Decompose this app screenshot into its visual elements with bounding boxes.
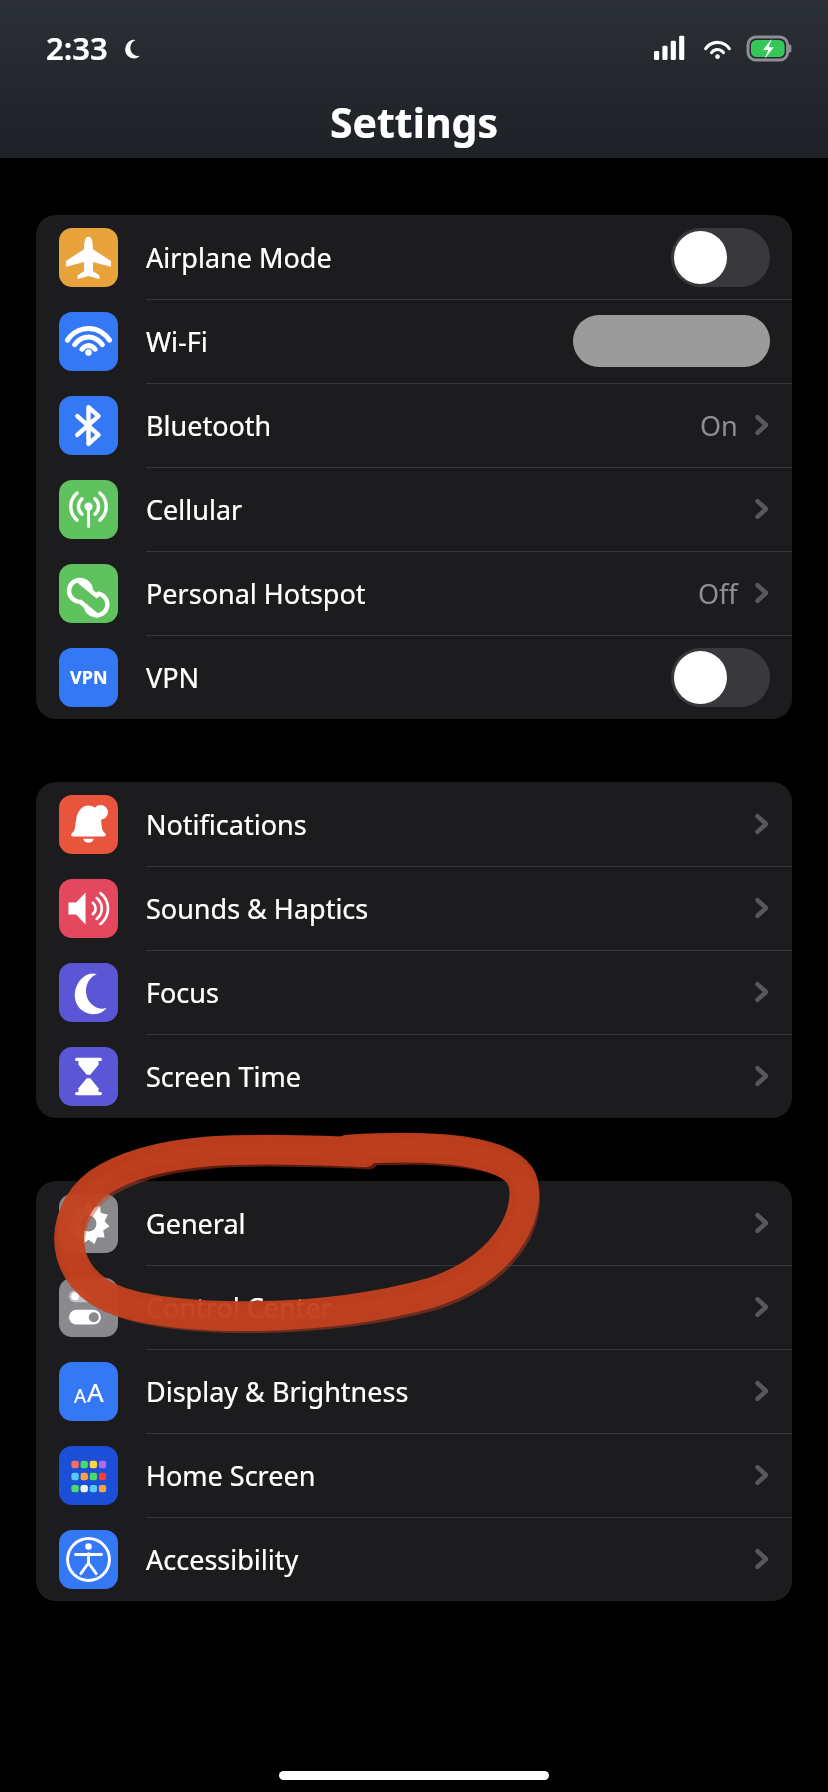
staticText: VPN bbox=[70, 665, 108, 690]
staticText: Bluetooth bbox=[146, 407, 272, 444]
button[interactable]: Focus bbox=[36, 950, 792, 1034]
staticText: Accessibility bbox=[146, 1541, 299, 1578]
staticText: A bbox=[87, 1374, 104, 1409]
button[interactable]: Airplane Mode toggle bbox=[671, 228, 770, 287]
staticText: Screen Time bbox=[146, 1058, 302, 1095]
button[interactable]: Screen Time bbox=[36, 1034, 792, 1118]
staticText: Control Center bbox=[146, 1289, 332, 1326]
staticText: Off bbox=[698, 575, 738, 612]
staticText: Notifications bbox=[146, 806, 307, 843]
staticText: 2:33 bbox=[46, 27, 108, 69]
staticText: On bbox=[700, 407, 738, 444]
button[interactable]: Notifications bbox=[36, 782, 792, 866]
button[interactable]: Personal Hotspot bbox=[36, 551, 792, 635]
button[interactable]: VPN toggle bbox=[671, 648, 770, 707]
button[interactable]: Accessibility bbox=[36, 1517, 792, 1601]
button[interactable]: Wi-Fi bbox=[36, 299, 792, 383]
staticText: Cellular bbox=[146, 491, 243, 528]
button[interactable]: Home Screen bbox=[36, 1433, 792, 1517]
button[interactable]: Cellular bbox=[36, 467, 792, 551]
staticText: Personal Hotspot bbox=[146, 575, 366, 612]
staticText: VPN bbox=[146, 659, 200, 696]
button[interactable]: VPN bbox=[36, 635, 792, 719]
staticText: Airplane Mode bbox=[146, 239, 332, 276]
staticText: Home Screen bbox=[146, 1457, 316, 1494]
button[interactable]: A bbox=[36, 1349, 792, 1433]
staticText: General bbox=[146, 1205, 246, 1242]
staticText: Focus bbox=[146, 974, 219, 1011]
button[interactable]: Control Center bbox=[36, 1265, 792, 1349]
staticText: Display & Brightness bbox=[146, 1373, 409, 1410]
button[interactable]: Sounds & Haptics bbox=[36, 866, 792, 950]
staticText: A bbox=[74, 1383, 87, 1409]
button[interactable]: Bluetooth bbox=[36, 383, 792, 467]
staticText: Sounds & Haptics bbox=[146, 890, 369, 927]
staticText: Settings bbox=[0, 94, 828, 150]
button[interactable]: General bbox=[36, 1181, 792, 1265]
button[interactable]: Airplane Mode bbox=[36, 215, 792, 299]
staticText: Wi-Fi bbox=[146, 323, 208, 360]
